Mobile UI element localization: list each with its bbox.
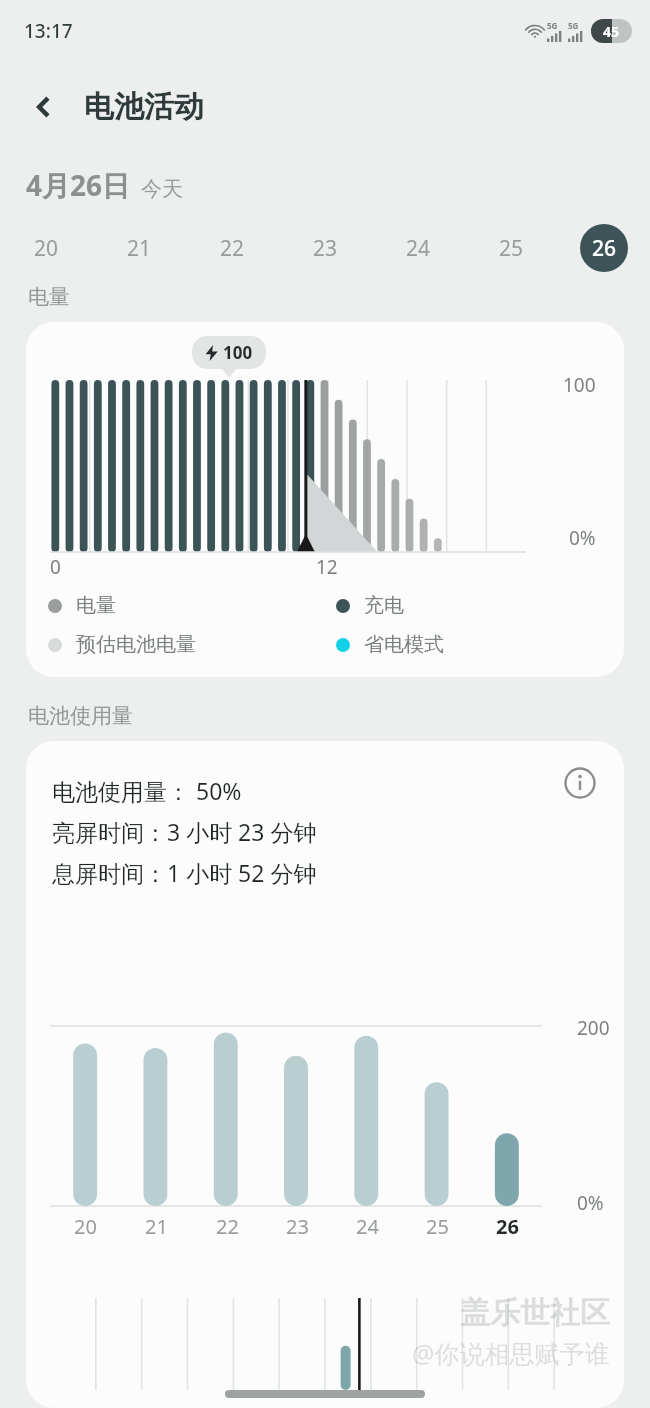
staticText: 电池使用量： 50% <box>52 775 242 806</box>
staticText: 盖乐世社区 <box>460 1294 610 1332</box>
staticText: 21 <box>127 234 152 263</box>
staticText: 22 <box>220 234 245 263</box>
staticText: 23 <box>313 234 338 263</box>
staticText: 21 <box>145 1213 168 1240</box>
staticText: 24 <box>356 1213 379 1240</box>
staticText: 4月26日 <box>26 166 131 204</box>
staticText: 26 <box>592 234 617 263</box>
staticText: 息屏时间：1 小时 52 分钟 <box>52 857 317 888</box>
staticText: 20 <box>74 1213 97 1240</box>
staticText: 24 <box>406 234 431 263</box>
staticText: 200 <box>577 1015 610 1041</box>
button[interactable]: 20 <box>22 224 70 272</box>
staticText: 25 <box>426 1213 449 1240</box>
staticText: 12 <box>316 554 338 580</box>
button[interactable]: 25 <box>487 224 535 272</box>
staticText: 今天 <box>141 176 183 202</box>
staticText: 5G <box>568 20 579 31</box>
staticText: 100 <box>223 341 253 364</box>
button[interactable]: 26 <box>580 224 628 272</box>
staticText: 充电 <box>364 593 404 618</box>
staticText: 电量 <box>28 284 70 310</box>
staticText: 预估电池电量 <box>76 632 196 657</box>
staticText: 13:17 <box>24 18 73 44</box>
staticText: 电量 <box>76 593 116 618</box>
button[interactable]: Info <box>560 763 600 803</box>
staticText: 26 <box>496 1213 519 1240</box>
staticText: 0% <box>577 1190 604 1216</box>
button[interactable]: 24 <box>394 224 442 272</box>
staticText: 22 <box>216 1213 239 1240</box>
staticText: 0% <box>569 525 596 551</box>
staticText: 0 <box>50 554 61 580</box>
button[interactable]: Back <box>18 81 70 133</box>
button[interactable]: 21 <box>115 224 163 272</box>
staticText: 100 <box>563 372 596 398</box>
button[interactable]: 23 <box>301 224 349 272</box>
staticText: 25 <box>499 234 524 263</box>
button[interactable]: 电池使用量： 50% <box>26 741 624 1408</box>
button[interactable]: 100 <box>26 322 624 677</box>
button[interactable]: 22 <box>208 224 256 272</box>
staticText: 亮屏时间：3 小时 23 分钟 <box>52 816 317 847</box>
staticText: 23 <box>286 1213 309 1240</box>
staticText: @你说相思赋予谁 <box>412 1336 610 1370</box>
staticText: 45 <box>603 22 620 41</box>
staticText: 20 <box>34 234 59 263</box>
staticText: 5G <box>547 20 558 31</box>
staticText: 省电模式 <box>364 632 444 657</box>
staticText: 电池使用量 <box>28 703 133 729</box>
staticText: 电池活动 <box>84 88 204 126</box>
